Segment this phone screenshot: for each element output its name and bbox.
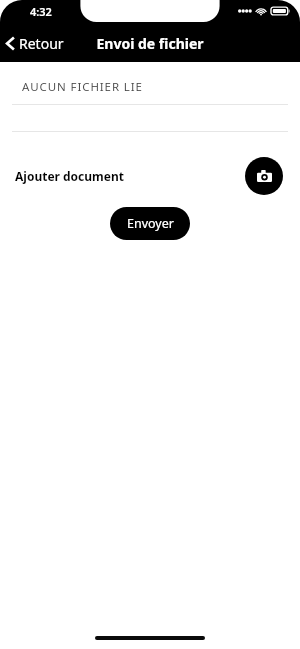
staticText: Retour: [19, 34, 64, 53]
staticText: AUCUN FICHIER LIE: [22, 79, 143, 95]
button[interactable]: Prendre une photo: [245, 157, 283, 195]
button[interactable]: Envoyer: [110, 207, 190, 240]
staticText: Ajouter document: [15, 168, 124, 184]
button[interactable]: Retour: [0, 30, 74, 57]
staticText: Envoyer: [127, 215, 174, 232]
staticText: 4:32: [30, 4, 52, 19]
staticText: Envoi de fichier: [96, 34, 204, 53]
